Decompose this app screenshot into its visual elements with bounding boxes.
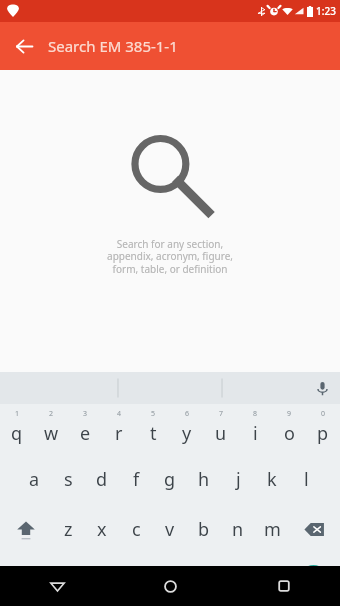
staticText: x <box>97 517 107 542</box>
staticText: o <box>284 421 295 446</box>
staticText: e <box>80 421 91 446</box>
staticText: Search for any section, appendix, acrony… <box>107 237 233 276</box>
button[interactable]: Backspace <box>289 504 340 554</box>
staticText: j <box>236 467 241 492</box>
staticText: 0 <box>321 409 326 419</box>
staticText: 1 <box>15 409 20 419</box>
button[interactable]: Home <box>114 566 227 606</box>
staticText: a <box>29 467 40 492</box>
staticText: y <box>182 421 192 446</box>
staticText: k <box>267 467 277 492</box>
staticText: s <box>64 467 73 492</box>
staticText: 4 <box>117 409 122 419</box>
button[interactable]: d <box>85 454 119 504</box>
button[interactable]: z <box>51 504 85 554</box>
button[interactable]: k <box>255 454 289 504</box>
staticText: v <box>165 517 175 542</box>
staticText: 3 <box>83 409 88 419</box>
button[interactable]: 7 <box>204 404 238 454</box>
button[interactable]: n <box>221 504 255 554</box>
staticText: 8 <box>253 409 258 419</box>
staticText: w <box>44 421 59 446</box>
button[interactable]: Voice input <box>304 372 340 404</box>
button[interactable]: Back <box>0 566 114 606</box>
button[interactable]: ?123 <box>0 554 54 606</box>
staticText: 5 <box>151 409 156 419</box>
button[interactable]: x <box>85 504 119 554</box>
button[interactable]: 8 <box>238 404 272 454</box>
staticText: h <box>198 467 210 492</box>
button[interactable]: a <box>17 454 51 504</box>
staticText: p <box>317 421 329 446</box>
button[interactable]: v <box>153 504 187 554</box>
button[interactable]: m <box>255 504 289 554</box>
button[interactable]: 1 <box>0 404 34 454</box>
button[interactable]: b <box>187 504 221 554</box>
staticText: t <box>150 421 157 446</box>
staticText: q <box>11 421 23 446</box>
staticText: 2 <box>49 409 54 419</box>
staticText: d <box>96 467 108 492</box>
staticText: z <box>64 517 73 542</box>
staticText: 1:23 <box>316 4 336 18</box>
staticText: 9 <box>287 409 292 419</box>
button[interactable]: 5 <box>136 404 170 454</box>
button[interactable]: f <box>119 454 153 504</box>
staticText: Search EM 385-1-1 <box>48 36 178 56</box>
staticText: i <box>253 421 258 446</box>
button[interactable]: Space <box>84 554 257 606</box>
button[interactable]: Recents <box>227 566 340 606</box>
staticText: m <box>264 517 281 542</box>
button[interactable]: j <box>221 454 255 504</box>
button[interactable]: 6 <box>170 404 204 454</box>
staticText: g <box>164 467 176 492</box>
button[interactable]: 4 <box>102 404 136 454</box>
button[interactable]: c <box>119 504 153 554</box>
button[interactable]: Back <box>0 22 48 70</box>
staticText: n <box>232 517 244 542</box>
button[interactable]: g <box>153 454 187 504</box>
staticText: 7 <box>219 409 224 419</box>
button[interactable]: Search EM 385-1-1 <box>48 22 332 70</box>
button[interactable]: h <box>187 454 221 504</box>
button[interactable]: 2 <box>34 404 68 454</box>
staticText: u <box>215 421 227 446</box>
button[interactable]: 0 <box>306 404 340 454</box>
button[interactable]: s <box>51 454 85 504</box>
staticText: c <box>132 517 141 542</box>
button[interactable]: . <box>257 554 287 606</box>
button[interactable]: Search <box>298 565 329 596</box>
button[interactable]: , <box>54 554 84 606</box>
staticText: b <box>198 517 210 542</box>
staticText: f <box>133 467 140 492</box>
staticText: 6 <box>185 409 190 419</box>
button[interactable]: 3 <box>68 404 102 454</box>
button[interactable]: l <box>289 454 323 504</box>
staticText: r <box>115 421 123 446</box>
button[interactable]: 9 <box>272 404 306 454</box>
button[interactable]: Shift <box>0 504 51 554</box>
staticText: l <box>304 467 309 492</box>
